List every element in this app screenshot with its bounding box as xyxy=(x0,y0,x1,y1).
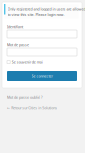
staticText: Se souvenir de moi xyxy=(12,60,43,64)
staticText: Identifiant xyxy=(7,24,23,29)
staticText: Mot de passe xyxy=(7,42,29,47)
staticText: Only registered and logged in users are … xyxy=(8,7,85,11)
button[interactable]: Se connecter xyxy=(7,71,77,81)
button[interactable]: Se souvenir de moi xyxy=(7,60,43,64)
staticText: to view this site. Please login now. xyxy=(8,12,65,17)
staticText: ← xyxy=(7,106,10,110)
button[interactable]: ← xyxy=(7,105,57,110)
staticText: Retour sur Cities in Solutions xyxy=(11,105,57,110)
staticText: Mot de passe oublié ? xyxy=(7,95,43,100)
button[interactable]: Mot de passe oublié ? xyxy=(7,95,43,100)
staticText: Se connecter xyxy=(31,73,52,78)
